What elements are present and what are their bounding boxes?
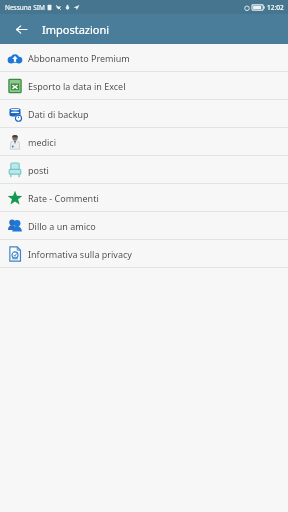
- button[interactable]: Abbonamento Premium: [0, 44, 288, 71]
- staticText: posti: [28, 164, 49, 176]
- staticText: 12:02: [267, 3, 284, 12]
- staticText: Esporto la data in Excel: [28, 80, 126, 92]
- button[interactable]: posti: [0, 156, 288, 183]
- button[interactable]: Rate - Commenti: [0, 184, 288, 211]
- button[interactable]: Esporto la data in Excel: [0, 72, 288, 99]
- staticText: medici: [28, 136, 56, 148]
- staticText: Impostazioni: [42, 22, 110, 37]
- button[interactable]: Back: [10, 18, 32, 40]
- button[interactable]: Dati di backup: [0, 100, 288, 127]
- button[interactable]: Informativa sulla privacy: [0, 240, 288, 267]
- staticText: Nessuna SIM: [5, 3, 45, 12]
- staticText: Informativa sulla privacy: [28, 248, 132, 260]
- staticText: Abbonamento Premium: [28, 52, 130, 64]
- button[interactable]: Dillo a un amico: [0, 212, 288, 239]
- staticText: Rate - Commenti: [28, 192, 99, 204]
- staticText: Dillo a un amico: [28, 220, 96, 232]
- button[interactable]: medici: [0, 128, 288, 155]
- staticText: Dati di backup: [28, 108, 89, 120]
